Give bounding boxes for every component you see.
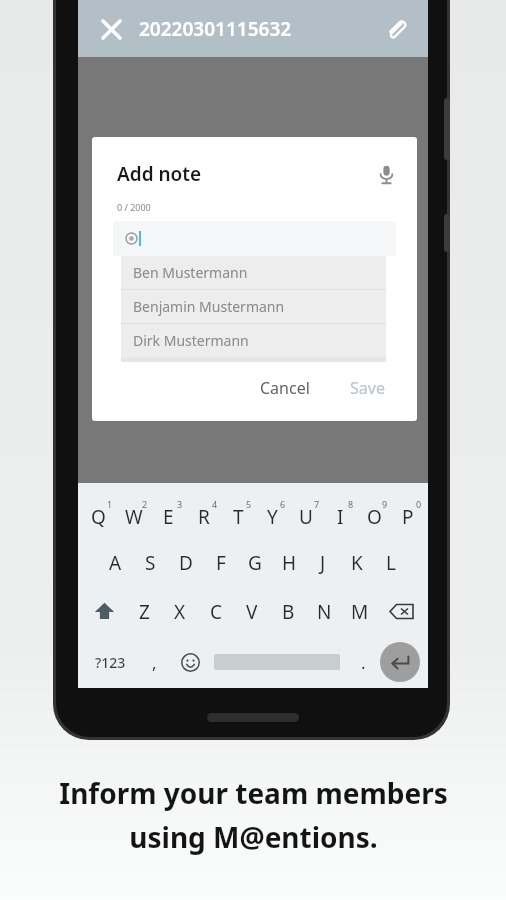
button[interactable]: ?123 (84, 638, 136, 686)
button[interactable]: M (342, 590, 378, 633)
button[interactable]: Enter (380, 642, 420, 682)
staticText: 20220301115632 (139, 16, 292, 42)
button[interactable]: K (340, 541, 374, 584)
button[interactable]: Dirk Mustermann (121, 324, 386, 357)
staticText: C (210, 599, 223, 625)
staticText: O (367, 504, 382, 530)
staticText: 3 (177, 498, 183, 510)
button[interactable]: J (306, 541, 340, 584)
button[interactable]: . (346, 638, 380, 686)
button[interactable]: F (203, 541, 238, 584)
button[interactable]: U (289, 492, 323, 535)
staticText: using M@entions. (129, 818, 378, 856)
staticText: T (233, 504, 244, 530)
staticText: Add note (117, 161, 202, 187)
staticText: L (386, 550, 396, 576)
button[interactable]: Emoji (172, 638, 208, 686)
button[interactable]: Benjamin Mustermann (121, 290, 386, 323)
staticText: U (299, 504, 313, 530)
staticText: B (282, 599, 295, 625)
staticText: R (198, 504, 210, 530)
staticText: F (216, 550, 226, 576)
button[interactable]: O (357, 492, 391, 535)
staticText: H (282, 550, 297, 576)
staticText: A (109, 550, 122, 576)
button[interactable]: Z (127, 590, 162, 633)
staticText: Save (350, 377, 385, 399)
button[interactable]: P (391, 492, 425, 535)
button[interactable]: Ben Mustermann (121, 256, 386, 289)
button[interactable]: Attach file (378, 11, 414, 47)
button[interactable]: Backspace (378, 590, 425, 633)
staticText: V (246, 599, 258, 625)
button[interactable]: Close (94, 12, 128, 46)
button[interactable]: R (186, 492, 221, 535)
staticText: Inform your team members (59, 774, 448, 812)
staticText: Q (91, 504, 106, 530)
staticText: 2 (142, 498, 148, 510)
button[interactable]: L (374, 541, 408, 584)
staticText: 6 (280, 498, 286, 510)
staticText: Cancel (260, 377, 310, 399)
staticText: Dirk Mustermann (133, 331, 249, 350)
button[interactable]: A (98, 541, 133, 584)
staticText: I (337, 504, 344, 530)
button[interactable]: V (234, 590, 270, 633)
button[interactable]: S (133, 541, 168, 584)
staticText: ?123 (95, 653, 126, 672)
button[interactable]: I (323, 492, 357, 535)
staticText: 1 (107, 498, 113, 510)
button[interactable]: H (272, 541, 306, 584)
staticText: 9 (382, 498, 388, 510)
button[interactable]: T (221, 492, 255, 535)
button[interactable]: N (306, 590, 342, 633)
staticText: Ben Mustermann (133, 263, 248, 282)
staticText: S (145, 550, 156, 576)
staticText: Z (139, 599, 150, 625)
staticText: J (320, 550, 326, 576)
staticText: 8 (348, 498, 354, 510)
staticText: . (361, 651, 366, 674)
button[interactable]: E (151, 492, 186, 535)
staticText: 7 (314, 498, 320, 510)
button[interactable]: X (162, 590, 198, 633)
staticText: Benjamin Mustermann (133, 297, 285, 316)
staticText: 5 (246, 498, 252, 510)
button[interactable]: , (136, 638, 172, 686)
staticText: Y (267, 504, 278, 530)
staticText: 0 / 2000 (117, 201, 151, 213)
staticText: N (317, 599, 332, 625)
button[interactable]: W (116, 492, 151, 535)
button[interactable]: Cancel (248, 371, 322, 405)
staticText: W (125, 504, 143, 530)
staticText: X (174, 599, 186, 625)
button[interactable]: Y (255, 492, 289, 535)
button[interactable]: Voice input (369, 157, 403, 191)
button[interactable]: G (238, 541, 272, 584)
button[interactable]: Save (340, 371, 395, 405)
staticText: K (351, 550, 363, 576)
staticText: M (351, 599, 369, 625)
staticText: 4 (212, 498, 218, 510)
button[interactable]: Q (81, 492, 116, 535)
button[interactable]: Shift (81, 590, 127, 633)
button[interactable]: B (270, 590, 306, 633)
button[interactable]: Space (214, 638, 340, 686)
staticText: , (152, 651, 157, 674)
staticText: P (402, 504, 414, 530)
button[interactable] (113, 221, 396, 256)
button[interactable]: C (198, 590, 234, 633)
staticText: D (179, 550, 193, 576)
staticText: G (248, 550, 262, 576)
staticText: 0 (416, 498, 422, 510)
staticText: E (163, 504, 174, 530)
button[interactable]: D (168, 541, 203, 584)
